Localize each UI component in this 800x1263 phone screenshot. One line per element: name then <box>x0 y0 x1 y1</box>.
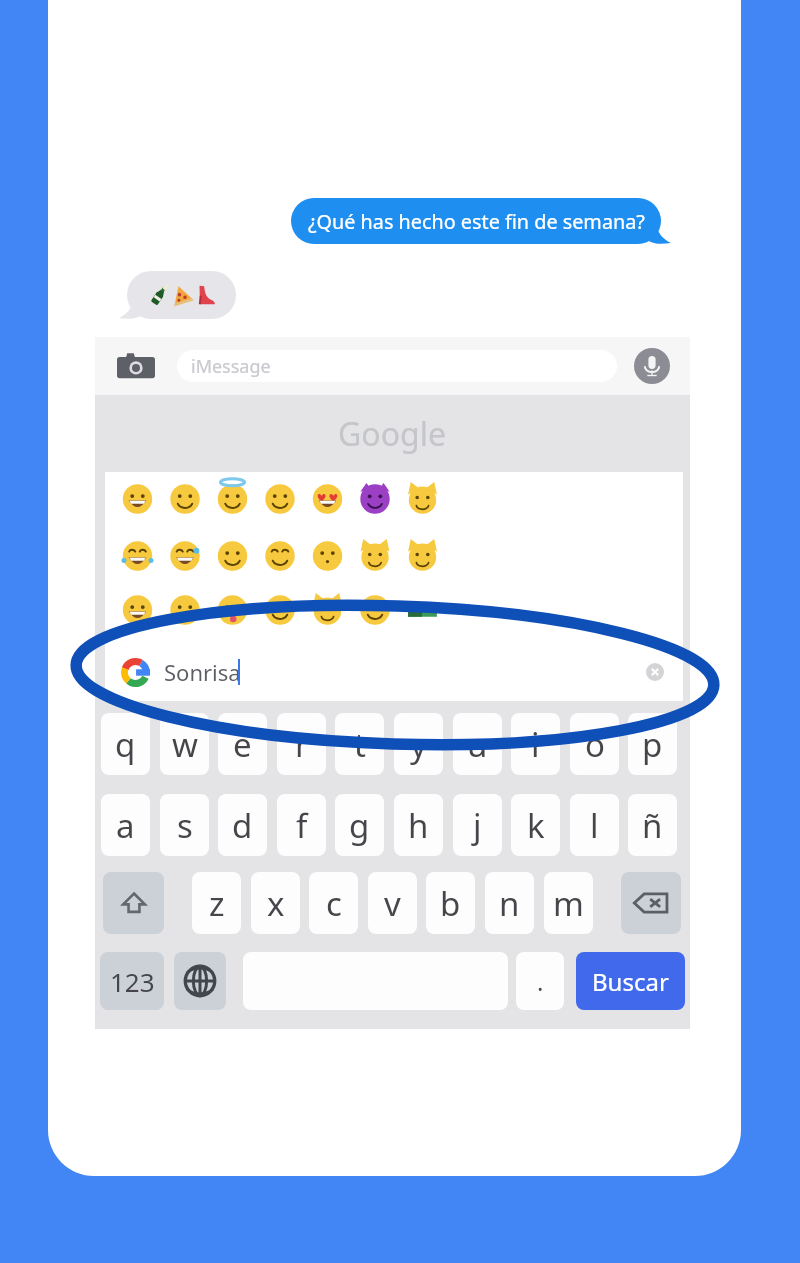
staticText: z <box>209 881 225 926</box>
staticText: . <box>537 965 544 998</box>
button[interactable]: Sonrisa <box>105 643 683 701</box>
staticText: ¿Qué has hecho este fin de semana? <box>308 208 645 235</box>
staticText: r <box>295 722 309 767</box>
button[interactable]: . <box>516 952 564 1010</box>
button[interactable]: m <box>544 872 593 934</box>
button[interactable]: Buscar <box>576 952 685 1010</box>
button[interactable]: t <box>335 713 384 775</box>
button[interactable]: Change keyboard <box>174 952 226 1010</box>
button[interactable]: r <box>277 713 326 775</box>
staticText: d <box>232 803 253 848</box>
staticText: iMessage <box>191 354 271 379</box>
staticText: k <box>527 803 545 848</box>
staticText: h <box>408 803 429 848</box>
button[interactable]: iMessage <box>177 350 617 382</box>
button[interactable]: c <box>309 872 358 934</box>
staticText: i <box>531 722 540 767</box>
button[interactable]: 123 <box>100 952 164 1010</box>
button[interactable]: s <box>160 794 209 856</box>
staticText: b <box>440 881 461 926</box>
button[interactable]: h <box>394 794 443 856</box>
staticText: s <box>177 803 193 848</box>
button[interactable]: Shift <box>103 872 164 934</box>
button[interactable]: z <box>192 872 241 934</box>
button[interactable]: w <box>160 713 209 775</box>
staticText: w <box>172 722 198 767</box>
staticText: e <box>233 722 252 767</box>
button[interactable]: e <box>218 713 267 775</box>
staticText: g <box>349 803 370 848</box>
staticText: o <box>585 722 605 767</box>
button[interactable]: q <box>101 713 150 775</box>
staticText: q <box>115 722 136 767</box>
staticText: v <box>384 881 401 926</box>
staticText: x <box>267 881 285 926</box>
staticText: u <box>467 722 488 767</box>
button[interactable]: v <box>368 872 417 934</box>
staticText: Google <box>338 412 447 456</box>
button[interactable]: a <box>101 794 150 856</box>
staticText: c <box>326 881 342 926</box>
button[interactable]: Camera <box>117 350 155 382</box>
staticText: m <box>553 881 584 926</box>
button[interactable]: b <box>426 872 475 934</box>
button[interactable]: g <box>335 794 384 856</box>
button[interactable]: y <box>394 713 443 775</box>
button[interactable]: ¿Qué has hecho este fin de semana? <box>291 198 671 244</box>
staticText: n <box>499 881 520 926</box>
button[interactable]: i <box>511 713 560 775</box>
button[interactable]: l <box>570 794 619 856</box>
staticText: y <box>410 722 427 767</box>
button[interactable]: Microphone <box>634 348 670 384</box>
staticText: f <box>296 803 308 848</box>
staticText: l <box>590 803 599 848</box>
button[interactable]: n <box>485 872 534 934</box>
button[interactable]: j <box>453 794 502 856</box>
button[interactable]: Backspace <box>621 872 681 934</box>
button[interactable]: d <box>218 794 267 856</box>
button[interactable]: u <box>453 713 502 775</box>
button[interactable]: o <box>570 713 619 775</box>
button[interactable]: x <box>251 872 300 934</box>
button[interactable] <box>120 271 236 319</box>
button[interactable]: f <box>277 794 326 856</box>
staticText: a <box>116 803 135 848</box>
button[interactable]: k <box>511 794 560 856</box>
staticText: 123 <box>110 964 155 999</box>
staticText: ñ <box>642 803 663 848</box>
button[interactable]: ñ <box>628 794 677 856</box>
staticText: Sonrisa <box>164 657 241 687</box>
staticText: j <box>473 803 482 848</box>
staticText: t <box>354 722 366 767</box>
button[interactable]: p <box>628 713 677 775</box>
staticText: p <box>642 722 663 767</box>
staticText: Buscar <box>592 965 669 998</box>
